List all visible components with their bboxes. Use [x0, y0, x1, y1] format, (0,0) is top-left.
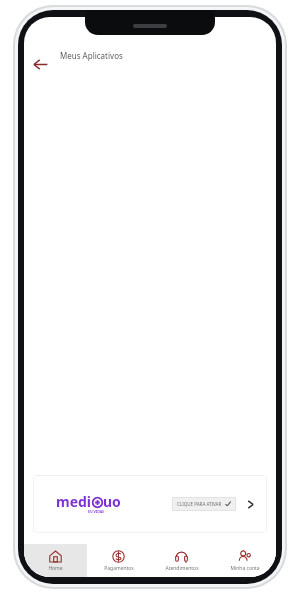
- staticText: Minha conta: [230, 565, 260, 572]
- button[interactable]: medi: [33, 475, 267, 533]
- staticText: Home: [48, 565, 63, 572]
- button[interactable]: Home: [24, 544, 87, 577]
- button[interactable]: Abrir: [243, 497, 257, 511]
- staticText: Meus Aplicativos: [60, 50, 123, 61]
- button[interactable]: Atendimentos: [150, 544, 213, 577]
- staticText: uo: [103, 492, 121, 511]
- staticText: CLIQUE PARA ATIVAR: [177, 501, 222, 507]
- staticText: Atendimentos: [165, 565, 199, 572]
- staticText: Pagamentos: [104, 565, 134, 572]
- button[interactable]: CLIQUE PARA ATIVAR: [172, 497, 236, 511]
- staticText: EU VIDAS: [88, 509, 104, 514]
- button[interactable]: Pagamentos: [87, 544, 150, 577]
- button[interactable]: Minha conta: [213, 544, 276, 577]
- button[interactable]: Back: [27, 51, 53, 77]
- staticText: medi: [56, 492, 92, 511]
